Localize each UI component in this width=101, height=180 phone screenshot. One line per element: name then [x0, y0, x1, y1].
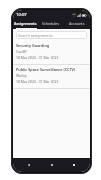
button[interactable]: Home: [45, 158, 59, 172]
button[interactable]: Recents: [67, 158, 81, 172]
button[interactable]: Back: [22, 158, 36, 172]
staticText: Assignments: [14, 21, 37, 26]
staticText: Public Space Surveillance (CCTV): [16, 67, 76, 72]
staticText: Cardiff: [16, 49, 27, 54]
staticText: Security Guarding: [16, 43, 50, 48]
button[interactable]: Accounts: [64, 19, 90, 28]
button[interactable]: Search assignments: [16, 31, 87, 39]
button[interactable]: Public Space Surveillance (CCTV): [13, 65, 90, 88]
staticText: Warley: [16, 73, 27, 78]
staticText: Schedules: [42, 21, 60, 26]
staticText: 18 Mar 2023 - 31 Mar 2023: [16, 79, 59, 84]
staticText: Accounts: [69, 21, 85, 26]
staticText: 10:07: [16, 12, 27, 18]
staticText: 18 Mar 2023 - 31 Mar 2023: [16, 55, 59, 60]
button[interactable]: Security Guarding: [13, 41, 90, 64]
button[interactable]: Assignments: [13, 19, 38, 28]
button[interactable]: Schedules: [38, 19, 64, 28]
staticText: Search assignments: [18, 33, 53, 38]
